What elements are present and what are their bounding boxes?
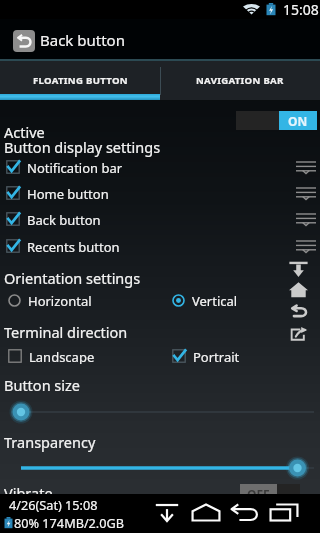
button[interactable]: Vibrate toggle (240, 484, 320, 503)
button[interactable]: Recent apps (286, 322, 310, 345)
button[interactable]: Horizontal (8, 292, 92, 308)
button[interactable]: Recents button (6, 238, 286, 253)
staticText: Orientation settings (4, 268, 141, 288)
staticText: Terminal direction (4, 322, 128, 342)
staticText: OFF (247, 486, 270, 502)
button[interactable]: Button size slider (0, 400, 320, 424)
staticText: NAVIGATION BAR (196, 74, 284, 87)
button[interactable]: Back (286, 299, 310, 322)
button[interactable]: Landscape (8, 348, 95, 364)
button[interactable]: Reorder (295, 212, 317, 226)
staticText: Button size (4, 375, 81, 395)
button[interactable]: NAVIGATION BAR (160, 61, 320, 100)
staticText: Back button (40, 30, 125, 50)
staticText: Recents button (27, 238, 120, 253)
staticText: Active (4, 122, 45, 142)
staticText: Landscape (29, 348, 95, 364)
staticText: 80% 174MB/2.0GB (14, 514, 125, 531)
button[interactable]: App icon, navigate up (13, 30, 35, 52)
staticText: Back button (27, 211, 101, 226)
staticText: 15:08 (283, 0, 319, 19)
button[interactable]: Home (186, 494, 225, 533)
staticText: Notification bar (27, 159, 123, 174)
button[interactable]: Home button (6, 185, 286, 200)
staticText: Button display settings (4, 137, 161, 157)
staticText: Home button (27, 185, 109, 200)
button[interactable]: Active toggle (236, 111, 317, 130)
staticText: Horizontal (28, 292, 92, 308)
staticText: 4/26(Sat) 15:08 (9, 496, 98, 513)
button[interactable]: Notification bar (6, 159, 286, 174)
button[interactable]: Back (225, 494, 264, 533)
button[interactable]: Vertical (172, 292, 238, 308)
button[interactable]: Portrait (172, 348, 240, 364)
staticText: ON (288, 113, 308, 129)
button[interactable]: Home (286, 278, 310, 301)
staticText: Vertical (192, 292, 238, 308)
staticText: FLOATING BUTTON (33, 74, 128, 87)
button[interactable]: Back button (6, 211, 286, 226)
staticText: Vibrate (4, 483, 53, 503)
button[interactable]: Transparency slider (0, 456, 320, 480)
button[interactable]: FLOATING BUTTON (0, 61, 160, 100)
button[interactable]: Reorder (295, 239, 317, 253)
staticText: Portrait (193, 348, 240, 364)
staticText: Transparency (4, 432, 96, 452)
button[interactable]: Pull down notification bar (286, 257, 310, 280)
button[interactable]: Reorder (295, 160, 317, 174)
button[interactable]: Reorder (295, 186, 317, 200)
button[interactable]: Recent apps (264, 494, 303, 533)
button[interactable]: Pull down notification bar (147, 494, 186, 533)
